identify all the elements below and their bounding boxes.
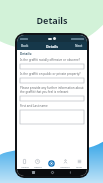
staticText: Please provide any further information a… [20, 86, 84, 94]
button[interactable]: Locate [44, 158, 58, 169]
button[interactable]: More [72, 158, 86, 169]
button[interactable]: Request [58, 158, 72, 169]
staticText: First and Last name [20, 104, 48, 108]
button[interactable]: Home [51, 171, 54, 174]
button[interactable]: Recents [32, 171, 35, 174]
button[interactable]: Back [20, 43, 30, 49]
staticText: Report [34, 165, 42, 168]
button[interactable]: First and Last name [20, 104, 84, 127]
staticText: Request [60, 165, 70, 168]
staticText: Details [46, 44, 59, 49]
button[interactable]: Details [45, 43, 60, 50]
staticText: Is the graffiti racially offensive or ob… [20, 58, 80, 62]
staticText: Next [75, 44, 83, 48]
button[interactable]: Please provide any further information a… [20, 86, 84, 104]
button[interactable]: Is the graffiti on public or private pro… [20, 72, 84, 86]
button[interactable]: Next [74, 43, 84, 49]
button[interactable]: Mobile [18, 158, 31, 169]
staticText: Is the graffiti on public or private pro… [20, 72, 81, 76]
staticText: Mobile [21, 165, 29, 168]
staticText: Details: [20, 52, 32, 56]
button[interactable]: Back [69, 171, 72, 174]
button[interactable]: Report [31, 158, 44, 169]
staticText: Back [21, 44, 29, 48]
staticText: Details [36, 14, 68, 26]
button[interactable]: Is the graffiti racially offensive or ob… [20, 58, 84, 72]
staticText: More [76, 165, 82, 168]
